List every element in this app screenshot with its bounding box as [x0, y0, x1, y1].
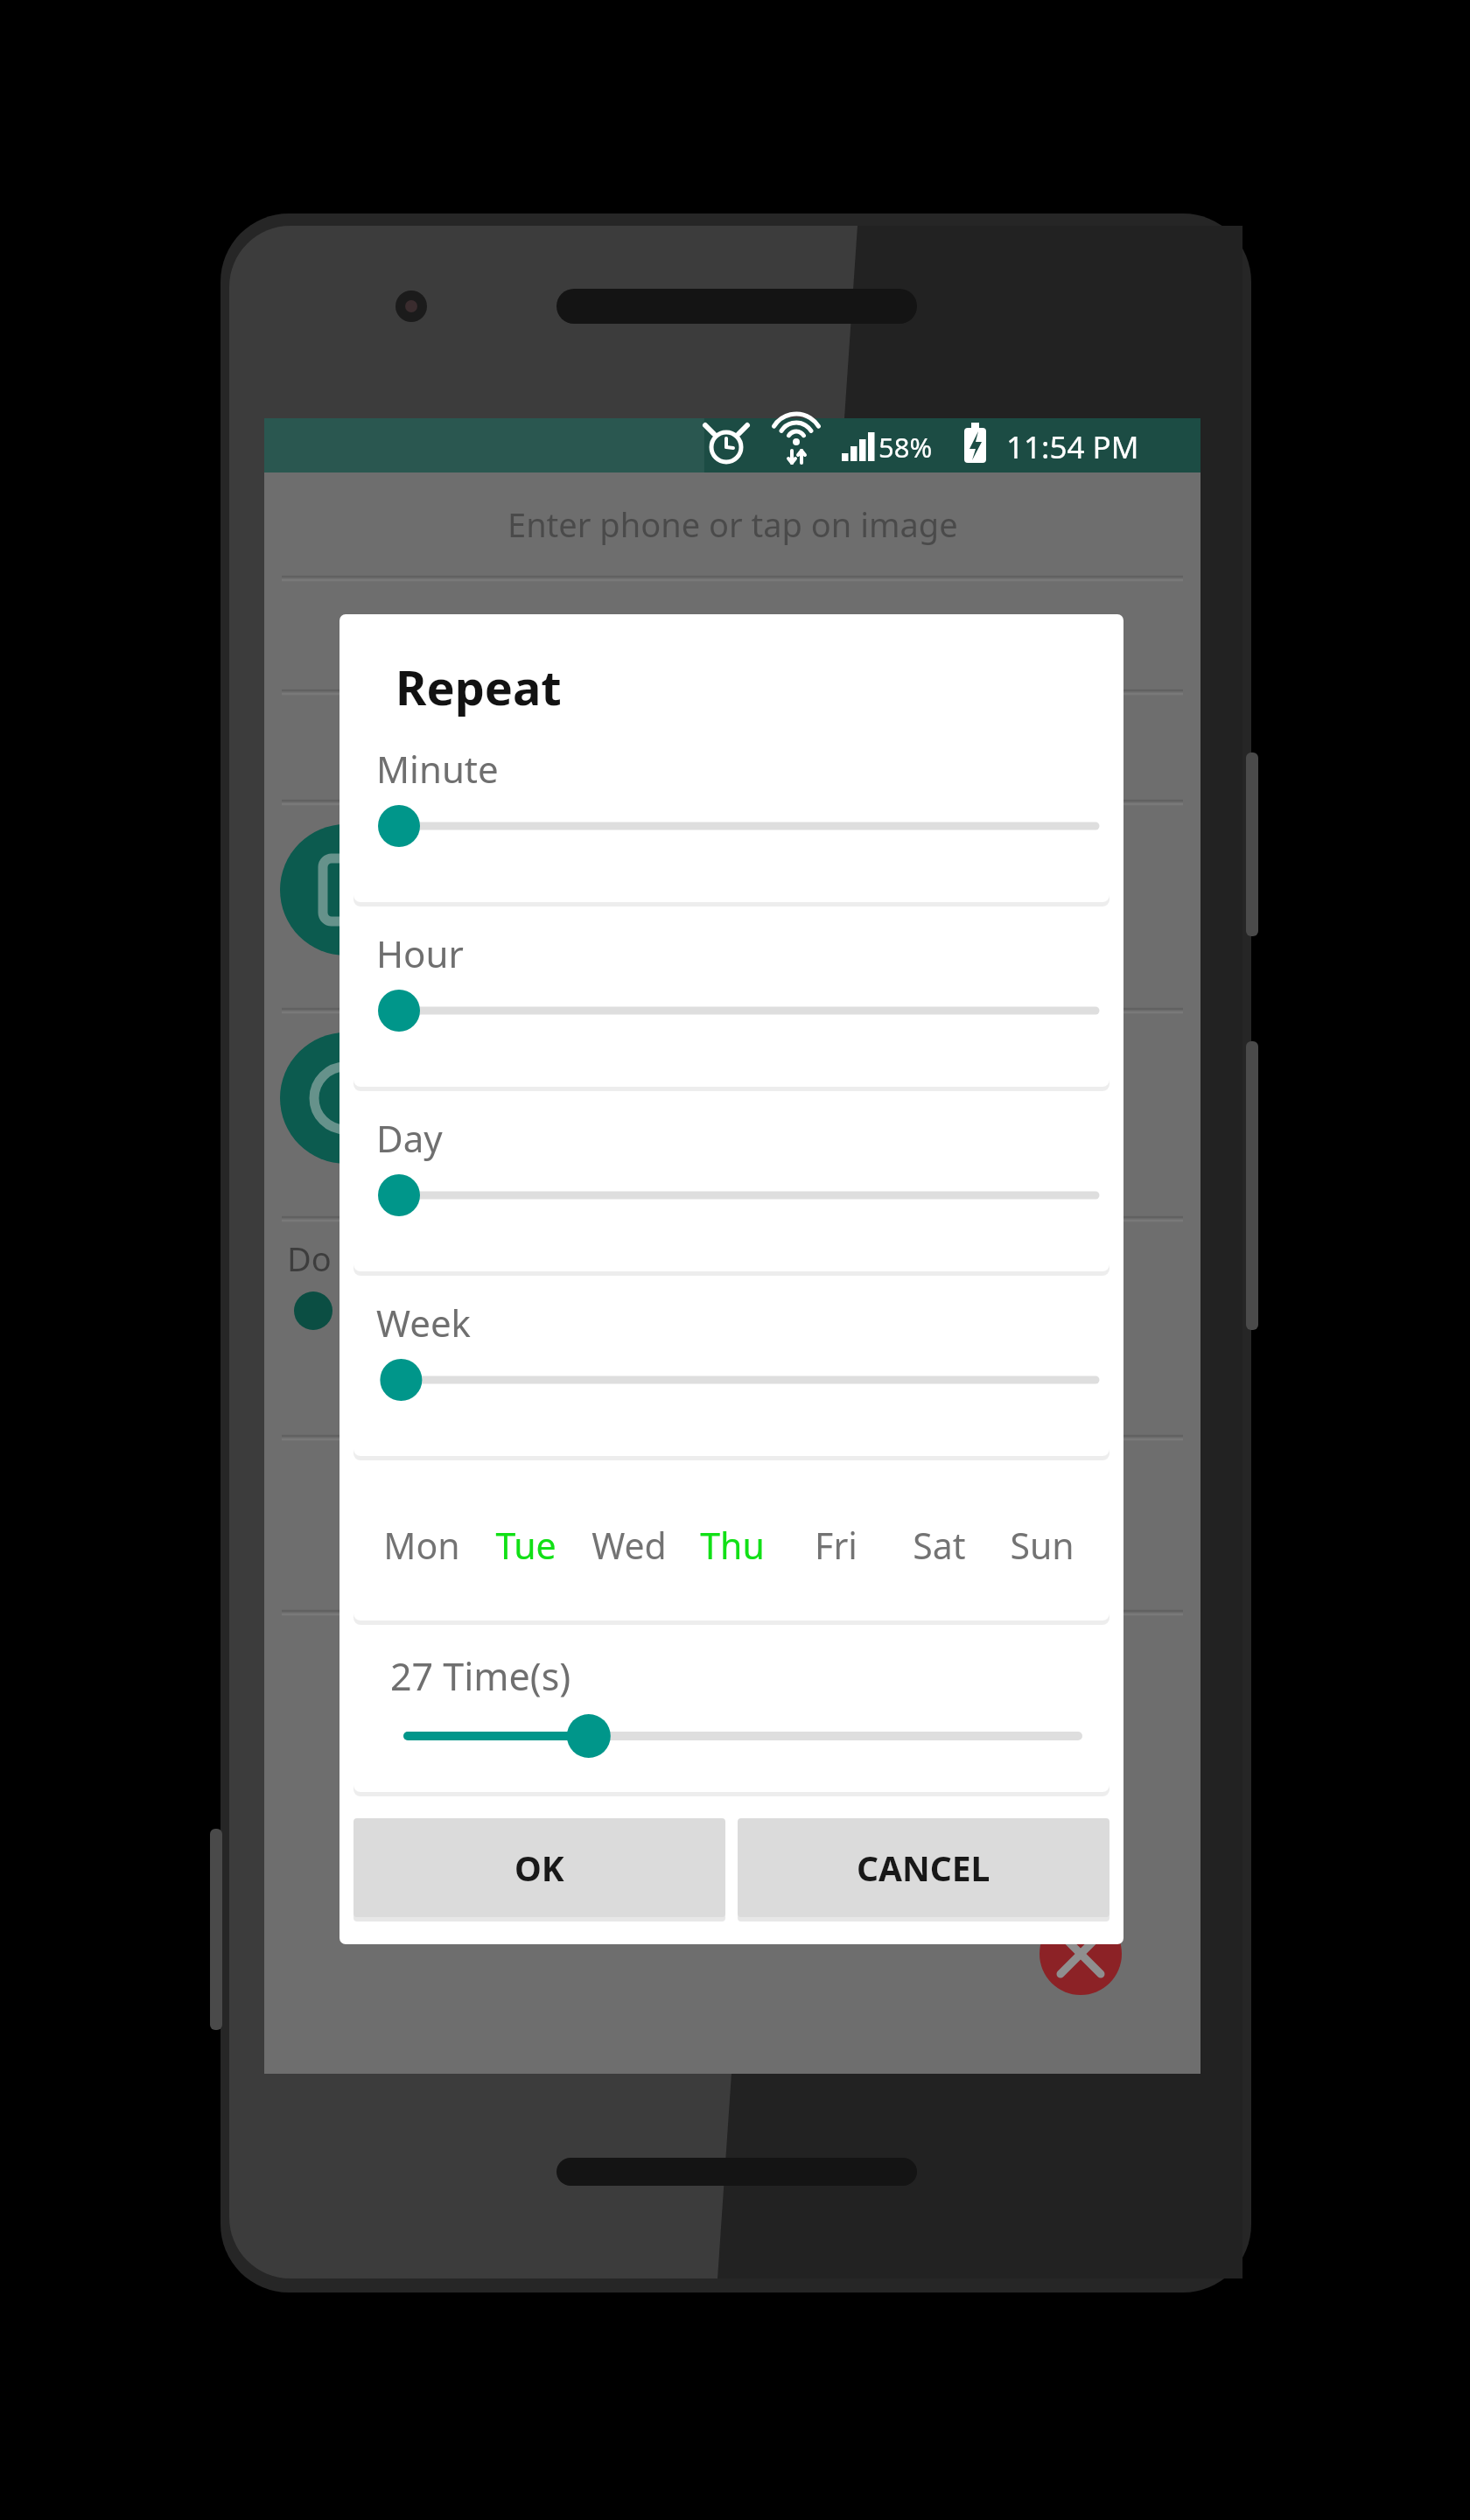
staticText: 27 Time(s) — [390, 1650, 571, 1702]
button[interactable]: 27 Time(s) — [353, 1634, 1109, 1792]
button[interactable]: Thu — [681, 1470, 784, 1620]
button[interactable]: Hour — [353, 916, 1109, 1087]
button[interactable] — [264, 1008, 1200, 1216]
button[interactable]: CANCEL — [738, 1818, 1109, 1917]
staticText: Tue — [495, 1521, 556, 1570]
button[interactable]: Do — [264, 1216, 1200, 1435]
button[interactable]: Wed — [577, 1470, 681, 1620]
staticText: Fri — [815, 1521, 857, 1570]
button[interactable] — [264, 1610, 1200, 1837]
staticText: Mon — [383, 1521, 460, 1570]
button[interactable]: Sat — [887, 1470, 990, 1620]
staticText: Day — [376, 1113, 443, 1163]
staticText: Hour — [376, 928, 464, 978]
staticText: Minute — [376, 744, 499, 794]
button[interactable]: Mon — [353, 1470, 1109, 1620]
staticText: Do — [287, 1235, 332, 1281]
staticText: Week — [376, 1298, 472, 1347]
button[interactable]: Sun — [990, 1470, 1094, 1620]
button[interactable] — [264, 576, 1200, 689]
staticText: Repeat — [395, 654, 562, 719]
button[interactable]: Day — [353, 1101, 1109, 1271]
button[interactable] — [264, 1435, 1200, 1610]
staticText: CANCEL — [857, 1844, 990, 1891]
button[interactable] — [264, 800, 1200, 1008]
staticText: Wed — [591, 1521, 667, 1570]
staticText: OK — [514, 1844, 564, 1891]
button[interactable]: Mon — [369, 1470, 473, 1620]
button[interactable]: Week — [353, 1285, 1109, 1456]
button[interactable] — [264, 689, 1200, 800]
button[interactable]: Minute — [353, 731, 1109, 902]
staticText: Thu — [700, 1521, 765, 1570]
button[interactable]: Fri — [784, 1470, 887, 1620]
staticText: 58% — [878, 429, 933, 465]
staticText: Enter phone or tap on image — [507, 501, 958, 547]
staticText: 11:54 PM — [1006, 426, 1139, 468]
staticText: Sun — [1010, 1521, 1074, 1570]
staticText: Sat — [913, 1521, 966, 1570]
button[interactable]: Close — [1039, 1913, 1122, 1995]
button[interactable]: Tue — [473, 1470, 577, 1620]
button[interactable]: OK — [353, 1818, 725, 1917]
